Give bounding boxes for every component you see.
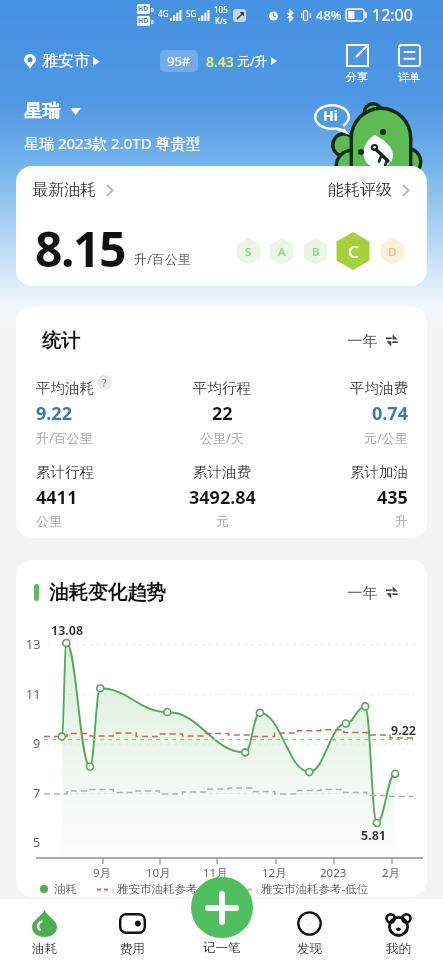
staticText: Hi xyxy=(323,106,338,125)
staticText: 平均油费 xyxy=(350,379,408,397)
staticText: HD xyxy=(138,16,149,26)
staticText: HD xyxy=(138,4,149,14)
staticText: ₀ xyxy=(151,4,154,14)
button[interactable]: 一年 xyxy=(347,583,403,603)
staticText: 公里/天 xyxy=(200,429,244,447)
staticText: 费用 xyxy=(120,941,145,957)
button[interactable]: 星瑞 xyxy=(24,100,81,123)
button[interactable]: 油耗 xyxy=(0,899,88,960)
staticText: 9 xyxy=(33,735,41,752)
staticText: 4G xyxy=(158,8,169,19)
staticText: 元/升 xyxy=(237,52,268,70)
staticText: 最新油耗 xyxy=(32,180,96,200)
staticText: 22 xyxy=(212,401,233,426)
staticText: 8.15 xyxy=(35,216,125,281)
staticText: 油耗变化趋势 xyxy=(49,580,166,605)
staticText: 雅安市 xyxy=(42,51,90,71)
button[interactable]: 记一笔 xyxy=(191,877,253,938)
staticText: 详单 xyxy=(398,70,420,84)
staticText: 105 xyxy=(214,4,228,15)
staticText: 统计 xyxy=(42,329,80,353)
staticText: 累计油费 xyxy=(193,463,251,481)
button[interactable]: 详单 xyxy=(396,45,422,84)
staticText: 12:00 xyxy=(372,4,413,26)
staticText: 平均行程 xyxy=(193,379,251,397)
button[interactable]: 评级 S xyxy=(235,238,262,265)
staticText: 元/公里 xyxy=(364,429,408,447)
staticText: 星瑞 xyxy=(24,100,60,123)
staticText: 5G xyxy=(186,8,197,19)
staticText: 累计行程 xyxy=(36,463,94,481)
staticText: A xyxy=(278,244,286,260)
staticText: 公里 xyxy=(36,513,62,529)
staticText: 3492.84 xyxy=(189,485,256,510)
staticText: 累计加油 xyxy=(350,463,408,481)
staticText: 我的 xyxy=(386,941,411,957)
button[interactable]: 分享 xyxy=(344,45,370,84)
staticText: 分享 xyxy=(346,70,368,84)
staticText: 4411 xyxy=(36,485,78,510)
button[interactable]: 我的 xyxy=(354,899,443,960)
staticText: D xyxy=(388,244,397,260)
staticText: 2月 xyxy=(382,865,401,881)
button[interactable]: 说明 xyxy=(97,375,112,390)
button[interactable]: 评级 B xyxy=(302,238,329,265)
staticText: 平均油耗 xyxy=(36,379,94,397)
staticText: 记一笔 xyxy=(203,940,241,956)
staticText: 8.43 xyxy=(206,52,234,71)
staticText: 11 xyxy=(26,686,41,703)
button[interactable]: 能耗评级 xyxy=(328,180,409,200)
staticText: ? xyxy=(102,376,107,390)
button[interactable]: 雅安市 xyxy=(24,51,100,71)
button[interactable]: 评级 A xyxy=(268,238,295,265)
staticText: ₀ xyxy=(151,16,154,26)
staticText: 油耗 xyxy=(32,941,57,957)
staticText: C xyxy=(348,240,359,263)
staticText: 2023 xyxy=(320,865,347,881)
staticText: 12月 xyxy=(262,865,287,881)
button[interactable]: 95# xyxy=(160,50,277,72)
staticText: 11月 xyxy=(203,865,228,881)
staticText: 一年 xyxy=(347,331,378,351)
staticText: 48% xyxy=(316,6,342,24)
staticText: 一年 xyxy=(347,583,378,603)
staticText: 95# xyxy=(167,52,191,70)
button[interactable]: 一年 xyxy=(347,331,403,351)
staticText: 9.22 xyxy=(36,401,72,426)
staticText: 9月 xyxy=(93,865,112,881)
button[interactable]: 费用 xyxy=(88,899,176,960)
staticText: 油耗 xyxy=(54,882,77,896)
staticText: S xyxy=(245,244,252,260)
staticText: B xyxy=(312,244,320,260)
staticText: 7 xyxy=(33,785,41,802)
staticText: K/s xyxy=(215,15,227,26)
staticText: 雅安市油耗参考-低位 xyxy=(261,881,369,897)
staticText: 星瑞 2023款 2.0TD 尊贵型 xyxy=(24,133,201,153)
button[interactable]: 评级 C xyxy=(334,232,372,270)
staticText: 5 xyxy=(33,834,41,851)
staticText: 雅安市油耗参考-均值 xyxy=(117,881,225,897)
staticText: 10月 xyxy=(146,865,171,881)
staticText: 元 xyxy=(216,513,229,529)
button[interactable]: 评级 D xyxy=(379,238,406,265)
staticText: 0.74 xyxy=(372,401,408,426)
staticText: 13 xyxy=(26,636,41,653)
staticText: 发现 xyxy=(297,941,322,957)
staticText: 435 xyxy=(377,485,408,510)
staticText: 9.22 xyxy=(391,722,416,739)
staticText: 升/百公里 xyxy=(36,429,93,447)
button[interactable]: 发现 xyxy=(265,899,354,960)
staticText: 升/百公里 xyxy=(134,250,191,268)
staticText: 升 xyxy=(395,513,408,529)
staticText: 13.08 xyxy=(51,622,84,639)
staticText: 能耗评级 xyxy=(328,180,392,200)
staticText: 5.81 xyxy=(361,827,386,844)
button[interactable]: 最新油耗 xyxy=(32,180,113,200)
